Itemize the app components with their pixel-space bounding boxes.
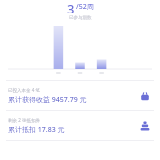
button[interactable]: 剩余 2 张抵扣券 bbox=[0, 111, 160, 140]
staticText: /52周 bbox=[76, 2, 94, 12]
staticText: 累计抵扣 17.83 元 bbox=[8, 125, 65, 135]
button[interactable]: 已投入本金 4 笔 bbox=[0, 81, 160, 110]
staticText: 剩余 2 张抵扣券 bbox=[8, 117, 40, 123]
other: 抵扣明细 bbox=[138, 119, 152, 133]
staticText: 已投入本金 4 笔 bbox=[8, 87, 40, 93]
staticText: 已参与期数 bbox=[69, 15, 92, 21]
staticText: 累计获得收益 9457.79 元 bbox=[8, 95, 87, 105]
other: 收益明细 bbox=[138, 89, 152, 103]
staticText: 3 bbox=[67, 0, 75, 13]
